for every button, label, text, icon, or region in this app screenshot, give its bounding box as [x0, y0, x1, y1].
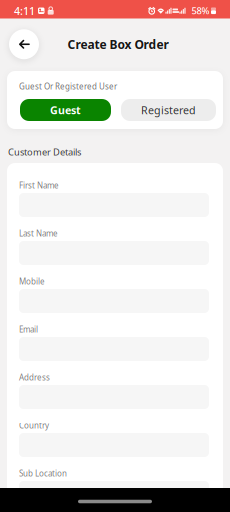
staticText: 4:11 — [14, 4, 35, 18]
staticText: Create Box Order — [67, 36, 168, 52]
staticText: Email — [19, 324, 38, 335]
staticText: Mobile — [19, 276, 45, 287]
button[interactable]: Sub Location — [19, 481, 209, 505]
staticText: Last Name — [19, 228, 58, 239]
staticText: Guest — [50, 103, 81, 117]
button[interactable]: Back — [9, 29, 39, 59]
staticText: First Name — [19, 180, 59, 191]
staticText: Address — [19, 372, 50, 383]
staticText: Customer Details — [8, 146, 81, 158]
staticText: 58% — [191, 5, 209, 17]
staticText: Sub Location — [19, 468, 67, 479]
button[interactable]: Registered — [121, 99, 216, 121]
staticText: Registered — [141, 103, 196, 117]
button[interactable]: Guest — [20, 99, 111, 121]
staticText: Country — [19, 420, 49, 431]
staticText: Guest Or Registered User — [19, 81, 117, 92]
